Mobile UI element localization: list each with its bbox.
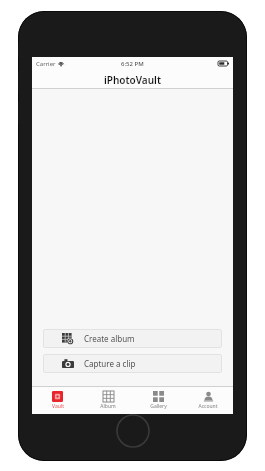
staticText: 6:52 PM — [121, 60, 144, 68]
staticText: Album — [100, 403, 116, 410]
staticText: Create album — [84, 333, 135, 344]
button[interactable]: Album — [83, 387, 133, 414]
button[interactable]: Create album — [43, 329, 222, 348]
button[interactable]: Home — [116, 414, 150, 448]
staticText: Vault — [52, 403, 64, 410]
staticText: Account — [198, 403, 218, 410]
button[interactable]: Vault — [32, 387, 83, 414]
staticText: Gallery — [150, 403, 167, 410]
staticText: Carrier — [36, 60, 56, 68]
staticText: Capture a clip — [84, 358, 136, 369]
staticText: iPhotoVault — [104, 73, 161, 87]
button[interactable]: Capture a clip — [43, 354, 222, 373]
button[interactable]: Gallery — [133, 387, 183, 414]
button[interactable]: Account — [183, 387, 233, 414]
